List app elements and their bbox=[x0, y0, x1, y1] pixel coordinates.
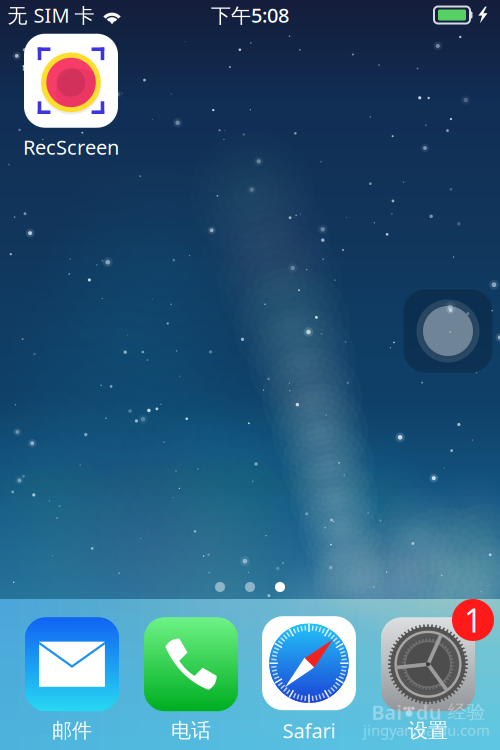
staticText: RecScreen bbox=[23, 134, 119, 160]
button[interactable]: AssistiveTouch bbox=[403, 289, 493, 373]
staticText: 无 SIM 卡 bbox=[7, 2, 94, 28]
staticText: 1 bbox=[464, 599, 482, 641]
staticText: 经验 bbox=[442, 700, 486, 723]
staticText: 下午5:08 bbox=[211, 2, 289, 28]
staticText: 设置 bbox=[408, 718, 448, 743]
button[interactable]: 邮件 bbox=[25, 617, 119, 743]
staticText: 电话 bbox=[171, 718, 211, 743]
button[interactable]: Safari bbox=[262, 616, 356, 744]
staticText: Bai bbox=[371, 699, 402, 725]
staticText: 邮件 bbox=[52, 718, 92, 743]
staticText: jingyan.baidu.com bbox=[363, 720, 490, 740]
button[interactable]: 电话 bbox=[144, 617, 238, 743]
button[interactable]: RecScreen bbox=[23, 34, 119, 160]
button[interactable]: 设置 bbox=[381, 617, 475, 743]
staticText: Safari bbox=[282, 717, 335, 744]
staticText: du bbox=[416, 699, 442, 725]
